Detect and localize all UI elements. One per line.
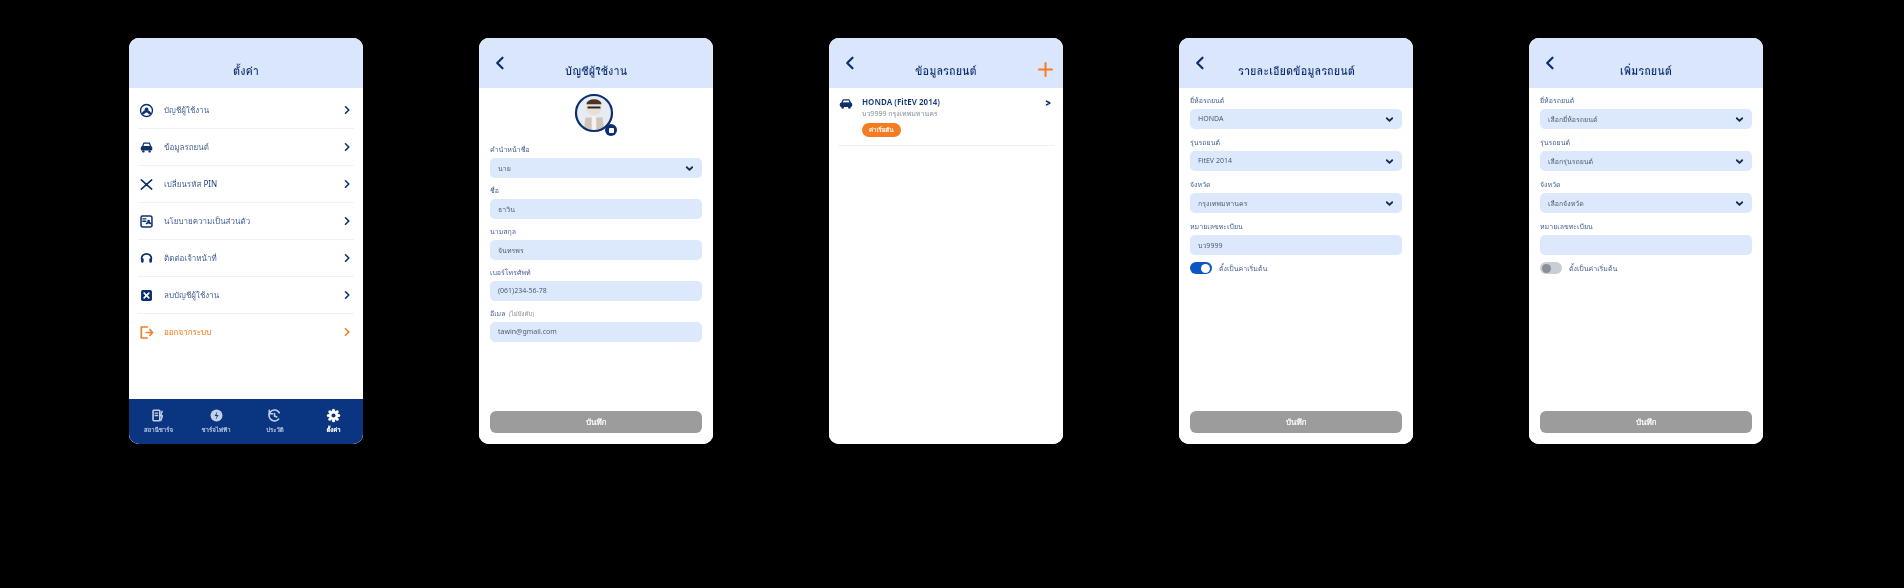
button[interactable]: Add vehicle: [1035, 59, 1055, 79]
button[interactable]: เลือกรุ่นรถยนต์: [1540, 151, 1752, 171]
staticText: ธาวิน: [498, 204, 694, 215]
button[interactable]: เลือกจังหวัด: [1540, 193, 1752, 213]
staticText: ตั้งเป็นค่าเริ่มต้น: [1569, 263, 1618, 274]
staticText: บัญชีผู้ใช้งาน: [565, 62, 628, 79]
staticText: บว9999: [1198, 240, 1394, 251]
button[interactable]: นาย: [490, 158, 702, 178]
button[interactable]: บันทึก: [1190, 411, 1402, 433]
button[interactable]: บันทึก: [490, 411, 702, 433]
staticText: (061)234-56-78: [498, 286, 694, 296]
button[interactable]: ออกจากระบบ: [129, 314, 363, 350]
button[interactable]: ประวัติ: [245, 399, 304, 444]
staticText: ออกจากระบบ: [164, 326, 342, 339]
staticText: บันทึก: [1636, 416, 1657, 429]
button[interactable]: tawin@gmail.com: [490, 322, 702, 342]
staticText: จังหวัด: [1540, 179, 1561, 190]
button[interactable]: ตั้งค่า: [304, 399, 363, 444]
staticText: บัญชีผู้ใช้งาน: [164, 104, 342, 117]
staticText: ยี่ห้อรถยนต์: [1190, 95, 1225, 106]
staticText: ตั้งค่า: [326, 425, 341, 435]
button[interactable]: Change photo: [605, 124, 617, 136]
staticText: ชาร์จไฟฟ้า: [201, 425, 231, 435]
staticText: สถานีชาร์จ: [144, 425, 173, 435]
button[interactable]: ชาร์จไฟฟ้า: [187, 399, 245, 444]
staticText: HONDA: [1198, 114, 1385, 124]
button[interactable]: (061)234-56-78: [490, 281, 702, 301]
button[interactable]: Back: [485, 48, 515, 78]
button[interactable]: ลบบัญชีผู้ใช้งาน: [129, 277, 363, 313]
staticText: ข้อมูลรถยนต์: [915, 62, 977, 79]
button[interactable]: HONDA: [1190, 109, 1402, 129]
button[interactable]: สถานีชาร์จ: [129, 399, 187, 444]
button[interactable]: ธาวิน: [490, 199, 702, 219]
button[interactable]: FitEV 2014: [1190, 151, 1402, 171]
staticText: tawin@gmail.com: [498, 327, 694, 337]
staticText: นามสกุล: [490, 226, 517, 237]
staticText: เพิ่มรถยนต์: [1620, 62, 1672, 79]
staticText: จันทรพร: [498, 245, 694, 256]
button[interactable]: ตั้งเป็นค่าเริ่มต้น: [1190, 262, 1268, 274]
staticText: HONDA (FitEV 2014): [862, 96, 941, 107]
staticText: ติดต่อเจ้าหน้าที่: [164, 252, 342, 265]
staticText: เลือกจังหวัด: [1548, 198, 1735, 209]
staticText: เลือกรุ่นรถยนต์: [1548, 156, 1735, 167]
staticText: เบอร์โทรศัพท์: [490, 267, 531, 278]
staticText: บว9999 กรุงเทพมหานคร: [862, 108, 938, 119]
button[interactable]: ตั้งเป็นค่าเริ่มต้น: [1540, 262, 1618, 274]
button[interactable]: Back: [1185, 48, 1215, 78]
button[interactable]: กรุงเทพมหานคร: [1190, 193, 1402, 213]
button[interactable]: Back: [1535, 48, 1565, 78]
staticText: คำนำหน้าชื่อ: [490, 144, 530, 155]
staticText: ประวัติ: [266, 425, 284, 435]
button[interactable]: เปลี่ยนรหัส PIN: [129, 166, 363, 202]
staticText: หมายเลขทะเบียน: [1540, 221, 1593, 232]
button[interactable]: ติดต่อเจ้าหน้าที่: [129, 240, 363, 276]
staticText: (ไม่บังคับ): [509, 309, 535, 319]
staticText: กรุงเทพมหานคร: [1198, 198, 1385, 209]
staticText: รุ่นรถยนต์: [1540, 137, 1570, 148]
staticText: อีเมล: [490, 308, 506, 319]
staticText: หมายเลขทะเบียน: [1190, 221, 1243, 232]
staticText: บันทึก: [586, 416, 607, 429]
staticText: เลือกยี่ห้อรถยนต์: [1548, 114, 1735, 125]
staticText: เปลี่ยนรหัส PIN: [164, 178, 342, 191]
button[interactable]: จันทรพร: [490, 240, 702, 260]
staticText: ยี่ห้อรถยนต์: [1540, 95, 1575, 106]
button[interactable]: บัญชีผู้ใช้งาน: [129, 92, 363, 128]
staticText: ชื่อ: [490, 185, 499, 196]
staticText: ค่าเริ่มต้น: [869, 125, 894, 135]
staticText: FitEV 2014: [1198, 156, 1385, 166]
button[interactable]: บันทึก: [1540, 411, 1752, 433]
staticText: บันทึก: [1286, 416, 1307, 429]
staticText: นาย: [498, 163, 685, 174]
button[interactable]: ข้อมูลรถยนต์: [129, 129, 363, 165]
staticText: จังหวัด: [1190, 179, 1211, 190]
staticText: รายละเอียดข้อมูลรถยนต์: [1238, 62, 1355, 79]
staticText: ลบบัญชีผู้ใช้งาน: [164, 289, 342, 302]
button[interactable]: บว9999: [1190, 235, 1402, 255]
button[interactable]: เลือกยี่ห้อรถยนต์: [1540, 109, 1752, 129]
staticText: ข้อมูลรถยนต์: [164, 141, 342, 154]
button[interactable]: Back: [835, 48, 865, 78]
staticText: ตั้งค่า: [233, 62, 260, 79]
staticText: นโยบายความเป็นส่วนตัว: [164, 215, 342, 228]
button[interactable]: นโยบายความเป็นส่วนตัว: [129, 203, 363, 239]
staticText: ตั้งเป็นค่าเริ่มต้น: [1219, 263, 1268, 274]
staticText: รุ่นรถยนต์: [1190, 137, 1220, 148]
button[interactable]: HONDA (FitEV 2014): [829, 88, 1063, 145]
